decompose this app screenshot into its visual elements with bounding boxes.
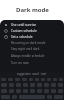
button[interactable] <box>9 83 14 87</box>
staticText: Use until sunrise <box>11 23 36 27</box>
button[interactable]: Always enable schedule <box>0 54 64 58</box>
button[interactable] <box>23 89 28 93</box>
button[interactable] <box>16 83 21 87</box>
staticText: Turn on now <box>11 61 29 65</box>
staticText: Set a schedule <box>11 35 33 39</box>
button[interactable] <box>1 83 7 87</box>
button[interactable]: Recurring on dark mode <box>0 41 64 45</box>
button[interactable] <box>9 89 14 93</box>
button[interactable] <box>59 78 63 81</box>
staticText: Recurring on dark mode <box>11 41 46 45</box>
button[interactable] <box>30 89 35 93</box>
other: Use until sunrise <box>4 23 8 27</box>
button[interactable] <box>37 83 42 87</box>
button[interactable] <box>1 78 6 81</box>
button[interactable] <box>22 78 27 81</box>
button[interactable] <box>37 89 42 93</box>
button[interactable] <box>41 78 45 81</box>
button[interactable] <box>8 78 13 81</box>
button[interactable] <box>16 89 21 93</box>
button[interactable]: Turn on now <box>0 61 64 65</box>
staticText: Always enable schedule <box>11 54 45 58</box>
button[interactable]: Set a schedule <box>0 34 64 40</box>
button[interactable]: Use until sunrise <box>0 22 64 28</box>
staticText: suggestion word next <box>17 72 47 76</box>
button[interactable] <box>58 89 63 93</box>
button[interactable] <box>47 78 51 81</box>
button[interactable] <box>44 89 49 93</box>
button[interactable] <box>30 83 35 87</box>
button[interactable] <box>29 78 33 81</box>
button[interactable] <box>51 89 56 93</box>
button[interactable]: Stay night until dark <box>0 47 64 51</box>
button[interactable]: Custom schedule <box>0 28 64 34</box>
button[interactable] <box>47 95 52 99</box>
staticText: Dark mode <box>16 6 49 14</box>
button[interactable] <box>51 83 56 87</box>
other: Set a schedule <box>4 35 8 39</box>
button[interactable] <box>54 95 63 99</box>
button[interactable] <box>23 83 28 87</box>
button[interactable] <box>58 83 63 87</box>
button[interactable] <box>44 83 49 87</box>
other: Custom schedule <box>4 29 8 33</box>
button[interactable] <box>15 78 20 81</box>
button[interactable] <box>53 78 57 81</box>
staticText: Custom schedule <box>11 29 37 33</box>
staticText: Stay night until dark <box>11 47 40 51</box>
button[interactable] <box>12 95 17 99</box>
button[interactable] <box>35 78 39 81</box>
button[interactable] <box>1 95 10 99</box>
button[interactable] <box>1 89 7 93</box>
